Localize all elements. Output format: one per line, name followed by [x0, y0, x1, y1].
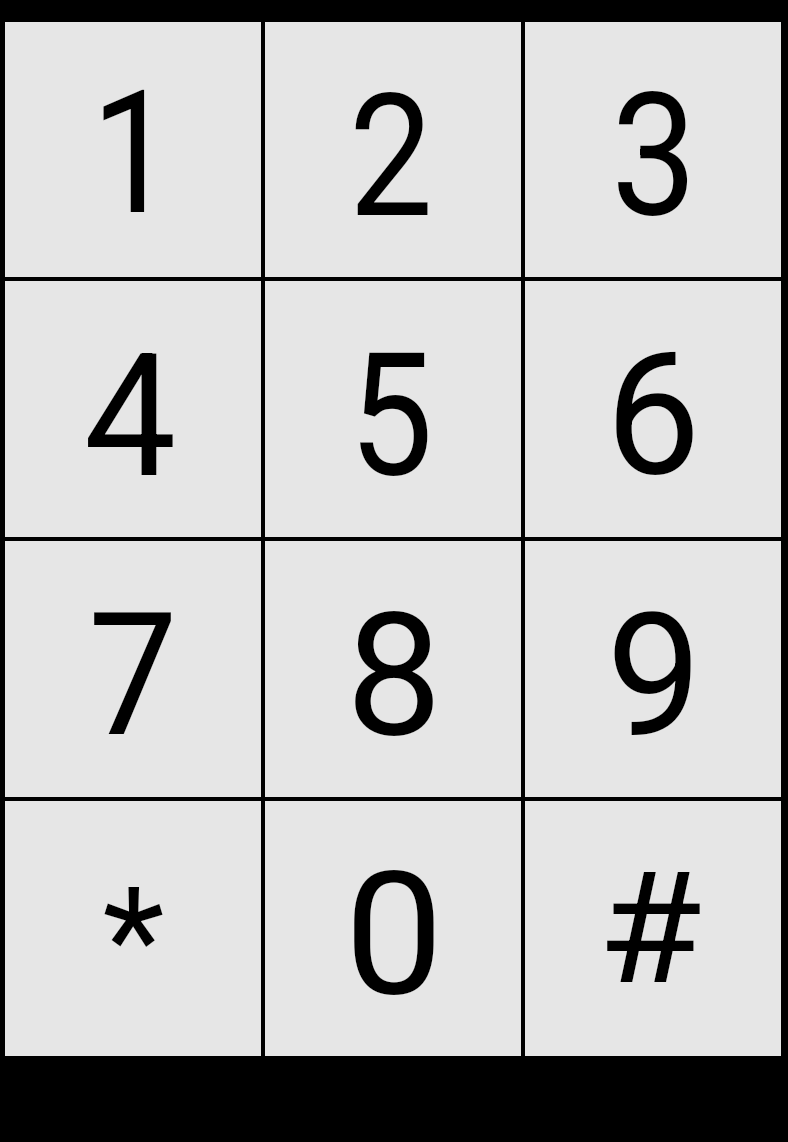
- staticText: 9: [606, 577, 702, 776]
- button[interactable]: Eight TUV: [265, 541, 521, 797]
- button[interactable]: Five JKL: [265, 281, 521, 537]
- staticText: #: [597, 838, 702, 1019]
- staticText: 7: [88, 576, 178, 775]
- button[interactable]: Four GHI: [5, 281, 261, 537]
- staticText: 5: [348, 316, 433, 515]
- button[interactable]: Three DEF: [525, 22, 781, 277]
- staticText: 2: [349, 57, 433, 256]
- button[interactable]: Zero plus: [265, 801, 521, 1056]
- button[interactable]: Six MNO: [525, 281, 781, 537]
- button[interactable]: Seven PQRS: [5, 541, 261, 797]
- button[interactable]: Nine WXYZ: [525, 541, 781, 797]
- button[interactable]: One: [5, 22, 261, 277]
- button[interactable]: Two ABC: [265, 22, 521, 277]
- button[interactable]: Star: [5, 801, 261, 1056]
- staticText: *: [102, 856, 165, 1025]
- staticText: 6: [605, 315, 701, 514]
- staticText: 4: [83, 317, 176, 516]
- staticText: 8: [345, 576, 442, 775]
- button[interactable]: Pound: [525, 801, 781, 1056]
- staticText: 3: [611, 56, 697, 255]
- staticText: 0: [344, 835, 444, 1034]
- staticText: 1: [91, 54, 175, 253]
